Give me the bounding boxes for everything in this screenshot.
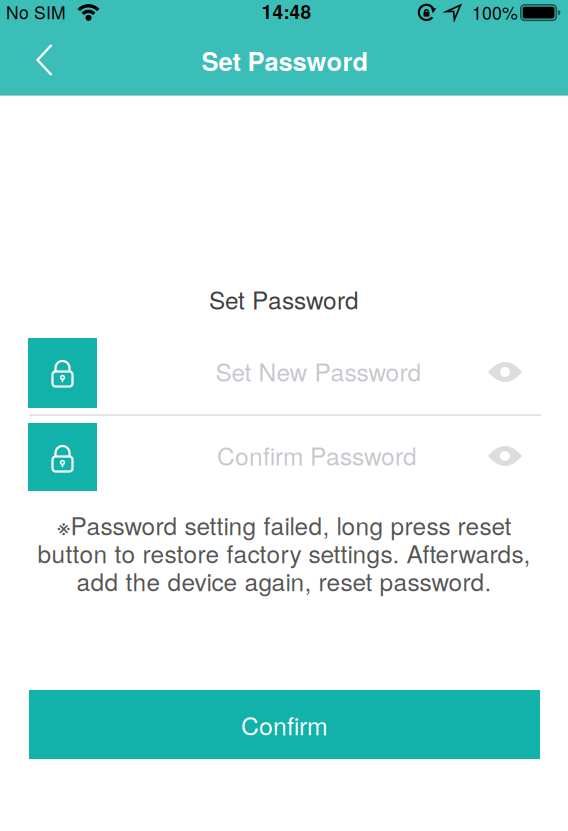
button[interactable]: Confirm [29,690,540,759]
staticText: Set New Password [215,353,421,389]
button[interactable]: Confirm Password [132,421,502,489]
staticText: Set Password [201,42,368,79]
button[interactable]: Set New Password [133,336,503,406]
staticText: Confirm [241,707,328,742]
staticText: 14:48 [261,0,311,25]
staticText: ※Password setting failed, long press res… [56,507,511,542]
staticText: No SIM [6,0,66,24]
staticText: add the device again, reset password. [76,563,491,598]
button[interactable]: Show password [483,350,527,394]
button[interactable]: Show password [483,434,527,478]
staticText: 100% [472,0,518,25]
button[interactable]: Back [23,38,67,82]
staticText: Set Password [209,281,359,316]
staticText: Confirm Password [217,437,417,473]
staticText: button to restore factory settings. Afte… [37,535,530,570]
